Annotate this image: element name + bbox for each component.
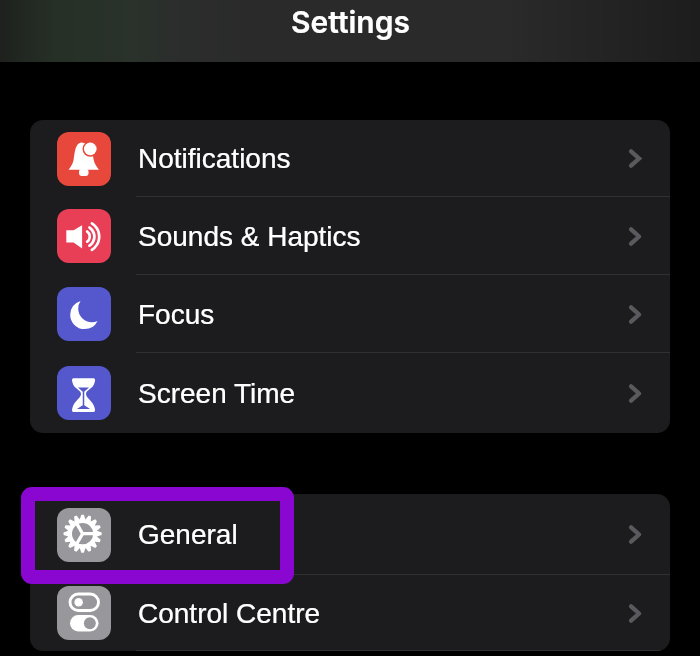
button[interactable]: Sounds & Haptics bbox=[30, 197, 670, 275]
staticText: General bbox=[138, 519, 238, 550]
button[interactable]: Screen Time bbox=[30, 353, 670, 433]
button[interactable]: Focus bbox=[30, 275, 670, 353]
button[interactable]: Control Centre bbox=[30, 575, 670, 651]
staticText: Notifications bbox=[138, 143, 291, 174]
button[interactable]: Notifications bbox=[30, 120, 670, 197]
staticText: Control Centre bbox=[138, 598, 321, 629]
staticText: Settings bbox=[291, 4, 410, 40]
staticText: Focus bbox=[138, 299, 215, 330]
staticText: Sounds & Haptics bbox=[138, 221, 361, 252]
staticText: Screen Time bbox=[138, 378, 296, 409]
button[interactable]: General bbox=[30, 494, 670, 575]
